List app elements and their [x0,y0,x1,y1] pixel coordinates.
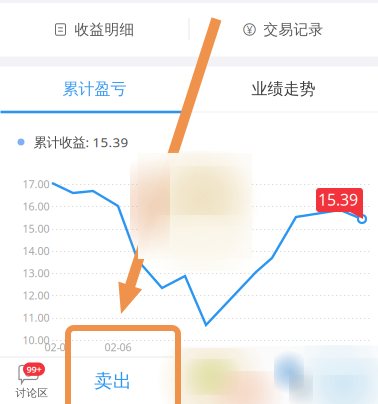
button[interactable]: 99+ [0,358,64,404]
staticText: 讨论区 [15,386,48,399]
staticText: 13.00 [22,266,49,280]
staticText: 15.00 [22,221,49,236]
staticText: 10.00 [22,333,49,347]
button[interactable]: 收益明细 [0,3,189,56]
staticText: 99+ [26,363,41,375]
staticText: ¥ [246,22,252,37]
staticText: 02-06 [104,340,131,354]
staticText: 11.00 [22,311,49,325]
staticText: 卖出 [94,369,132,392]
button[interactable]: 业绩走势 [189,66,378,111]
staticText: 02-01 [44,340,71,354]
staticText: 业绩走势 [251,79,315,99]
button[interactable]: 累计盈亏 [0,66,189,111]
staticText: 累计盈亏 [62,79,126,99]
staticText: 16.00 [22,199,49,213]
staticText: 14.00 [22,244,49,258]
staticText: 15.39 [318,189,358,210]
staticText: 17.00 [22,177,49,191]
staticText: 累计收益: 15.39 [33,133,128,151]
staticText: 12.00 [22,288,49,302]
staticText: 收益明细 [74,20,134,38]
button[interactable]: 卖出 [64,358,162,404]
staticText: 交易记录 [263,20,323,38]
button[interactable]: ¥ [189,3,378,56]
